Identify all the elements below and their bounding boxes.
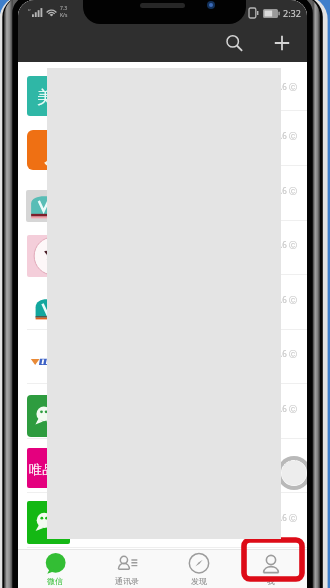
button[interactable]: Add [267, 28, 296, 57]
button[interactable]: …6 Ⓒ [18, 220, 307, 275]
staticText: …6 Ⓒ [276, 457, 297, 468]
button[interactable]: …6 Ⓒ [18, 62, 307, 111]
staticText: 美 [37, 87, 54, 108]
button[interactable]: 通讯录 [91, 549, 163, 588]
staticText: …6 Ⓒ [276, 130, 297, 141]
button[interactable]: …6 Ⓒ [18, 329, 307, 384]
staticText: …6 Ⓒ [276, 348, 297, 359]
staticText: K/s [60, 12, 68, 19]
staticText: 7.3 [60, 5, 68, 12]
button[interactable]: …6 Ⓒ [18, 438, 307, 493]
staticText: 唯品会 [29, 461, 67, 477]
staticText: …6 Ⓒ [276, 185, 297, 196]
staticText: 我 [267, 576, 275, 586]
button[interactable]: …6 Ⓒ [18, 275, 307, 330]
staticText: …6 Ⓒ [276, 239, 297, 250]
button[interactable]: …6 Ⓒ [18, 111, 307, 166]
staticText: 通讯录 [115, 576, 139, 586]
staticText: …6 Ⓒ [276, 294, 297, 305]
button[interactable]: Search [219, 28, 248, 57]
button[interactable]: …6 Ⓒ [18, 384, 307, 439]
button[interactable]: …6 Ⓒ [18, 493, 307, 548]
button[interactable]: 我 [235, 549, 307, 588]
staticText: 微信 [47, 576, 63, 586]
button[interactable]: 微信 [18, 549, 91, 588]
staticText: …6 Ⓒ [276, 512, 297, 523]
button[interactable]: 发现 [163, 549, 235, 588]
button[interactable]: …6 Ⓒ [18, 166, 307, 221]
staticText: …6 Ⓒ [276, 81, 297, 92]
staticText: “ [28, 7, 31, 17]
staticText: 2:32 [283, 7, 301, 19]
staticText: 发现 [191, 576, 207, 586]
staticText: …6 Ⓒ [276, 403, 297, 414]
